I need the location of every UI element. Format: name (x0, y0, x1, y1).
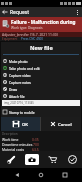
button[interactable]: Make photo (1, 57, 81, 64)
staticText: OK (22, 121, 29, 127)
button[interactable]: OK (1, 117, 40, 131)
staticText: Cancel (58, 121, 72, 127)
staticText: Adjuster, Jennifer (16.7. 2021 11:30) (2, 32, 58, 37)
button[interactable]: Service (0, 151, 22, 168)
staticText: Capture notes (9, 80, 31, 84)
button[interactable]: Back (0, 7, 10, 17)
staticText: img_20210716_113045 (4, 101, 34, 105)
button[interactable]: Recents (58, 168, 72, 182)
staticText: Take photo and edit (9, 66, 40, 70)
button[interactable]: Complete (63, 151, 82, 168)
staticText: Description (2, 132, 18, 136)
staticText: Press CNC 4500 (21, 37, 44, 41)
staticText: Stamp to mobile (9, 110, 35, 114)
staticText: Work time (2, 137, 19, 142)
button[interactable]: Capture notes (1, 78, 81, 85)
staticText: New file (30, 44, 53, 52)
staticText: Attach file (9, 94, 25, 98)
staticText: Failure - Malfunction during (11, 19, 76, 25)
staticText: Downtime minutes (2, 142, 33, 147)
button[interactable]: Stamp to mobile (1, 107, 81, 117)
staticText: Capture video (9, 73, 31, 77)
staticText: 700 (33, 142, 39, 147)
button[interactable]: Camera (22, 151, 42, 168)
button[interactable]: Capture video (1, 71, 81, 78)
button[interactable]: Materials (42, 151, 63, 168)
staticText: Work type: Diagnosis (11, 26, 43, 30)
staticText: 63.5 (32, 147, 39, 151)
staticText: Equipment (2, 37, 18, 41)
button[interactable]: Draw (1, 85, 81, 92)
staticText: Draw (9, 87, 18, 91)
button[interactable]: Home (34, 168, 48, 182)
button[interactable]: More options (73, 7, 82, 17)
button[interactable]: img_20210716_113045 (2, 100, 80, 106)
staticText: 0:35 (32, 137, 39, 142)
button[interactable]: Back (10, 168, 24, 182)
button[interactable]: Cancel (41, 117, 81, 131)
staticText: Make photo (9, 59, 28, 63)
staticText: Material costs (2, 147, 25, 151)
button[interactable]: Attach file (1, 92, 81, 99)
staticText: Request (10, 9, 30, 16)
button[interactable]: Take photo and edit (1, 64, 81, 71)
